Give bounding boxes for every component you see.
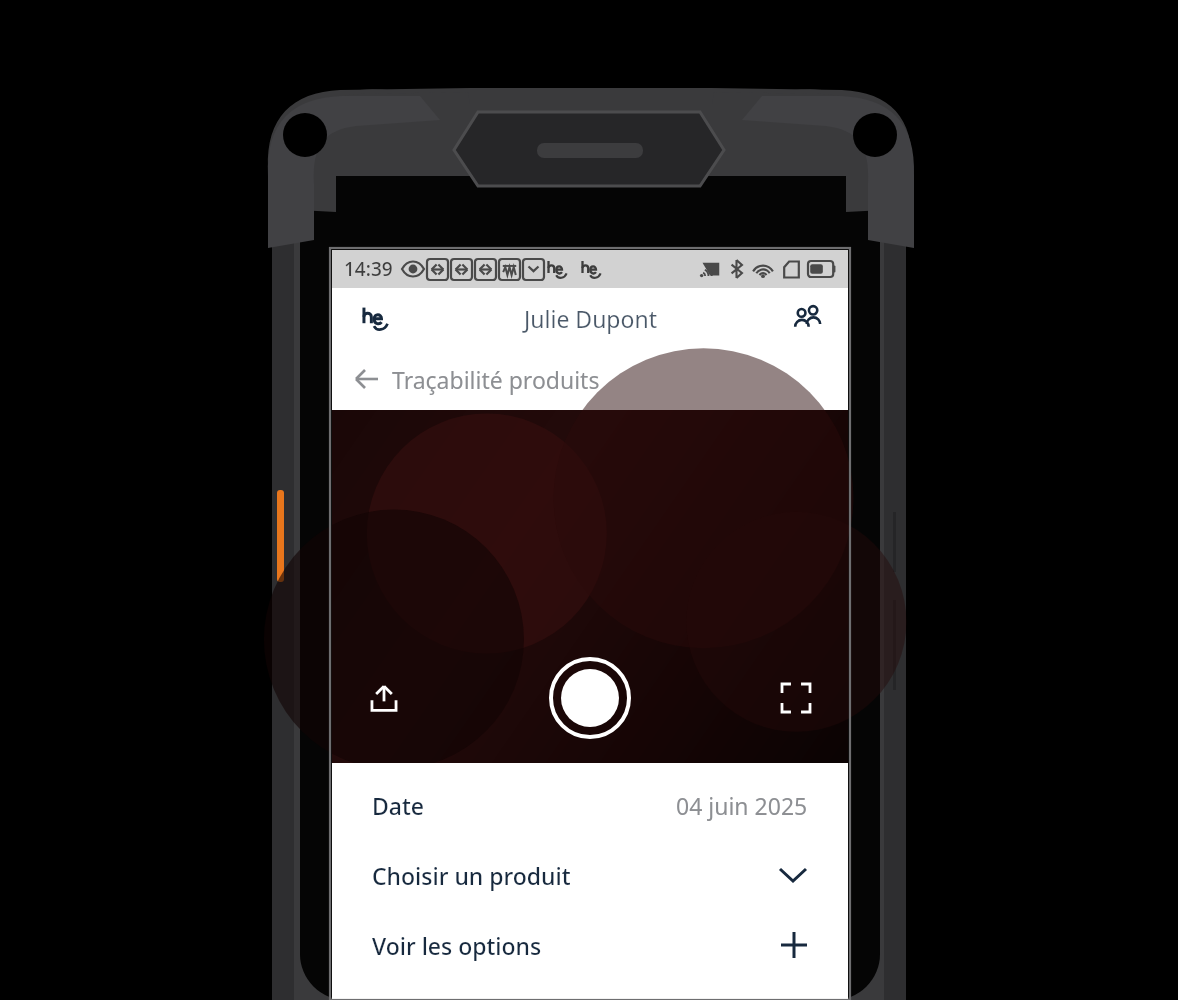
button[interactable]: Voir les options bbox=[332, 925, 848, 965]
button[interactable]: Take photo bbox=[546, 654, 634, 742]
button[interactable]: Contacts bbox=[790, 300, 826, 336]
staticText: 04 juin 2025 bbox=[676, 790, 808, 821]
button[interactable]: he logo, home bbox=[358, 301, 405, 335]
staticText: 14:39 bbox=[344, 256, 393, 282]
staticText: Julie Dupont bbox=[524, 303, 657, 334]
button[interactable]: Choisir un produit bbox=[332, 855, 848, 895]
button[interactable]: Traçabilité produits bbox=[332, 348, 848, 410]
staticText: Choisir un produit bbox=[372, 860, 571, 891]
button[interactable]: Scan barcode bbox=[774, 676, 818, 720]
staticText: Date bbox=[372, 790, 424, 821]
button[interactable]: Import from gallery bbox=[362, 676, 406, 720]
staticText: Voir les options bbox=[372, 930, 542, 961]
button[interactable]: Date bbox=[332, 785, 848, 825]
staticText: Traçabilité produits bbox=[392, 364, 600, 395]
